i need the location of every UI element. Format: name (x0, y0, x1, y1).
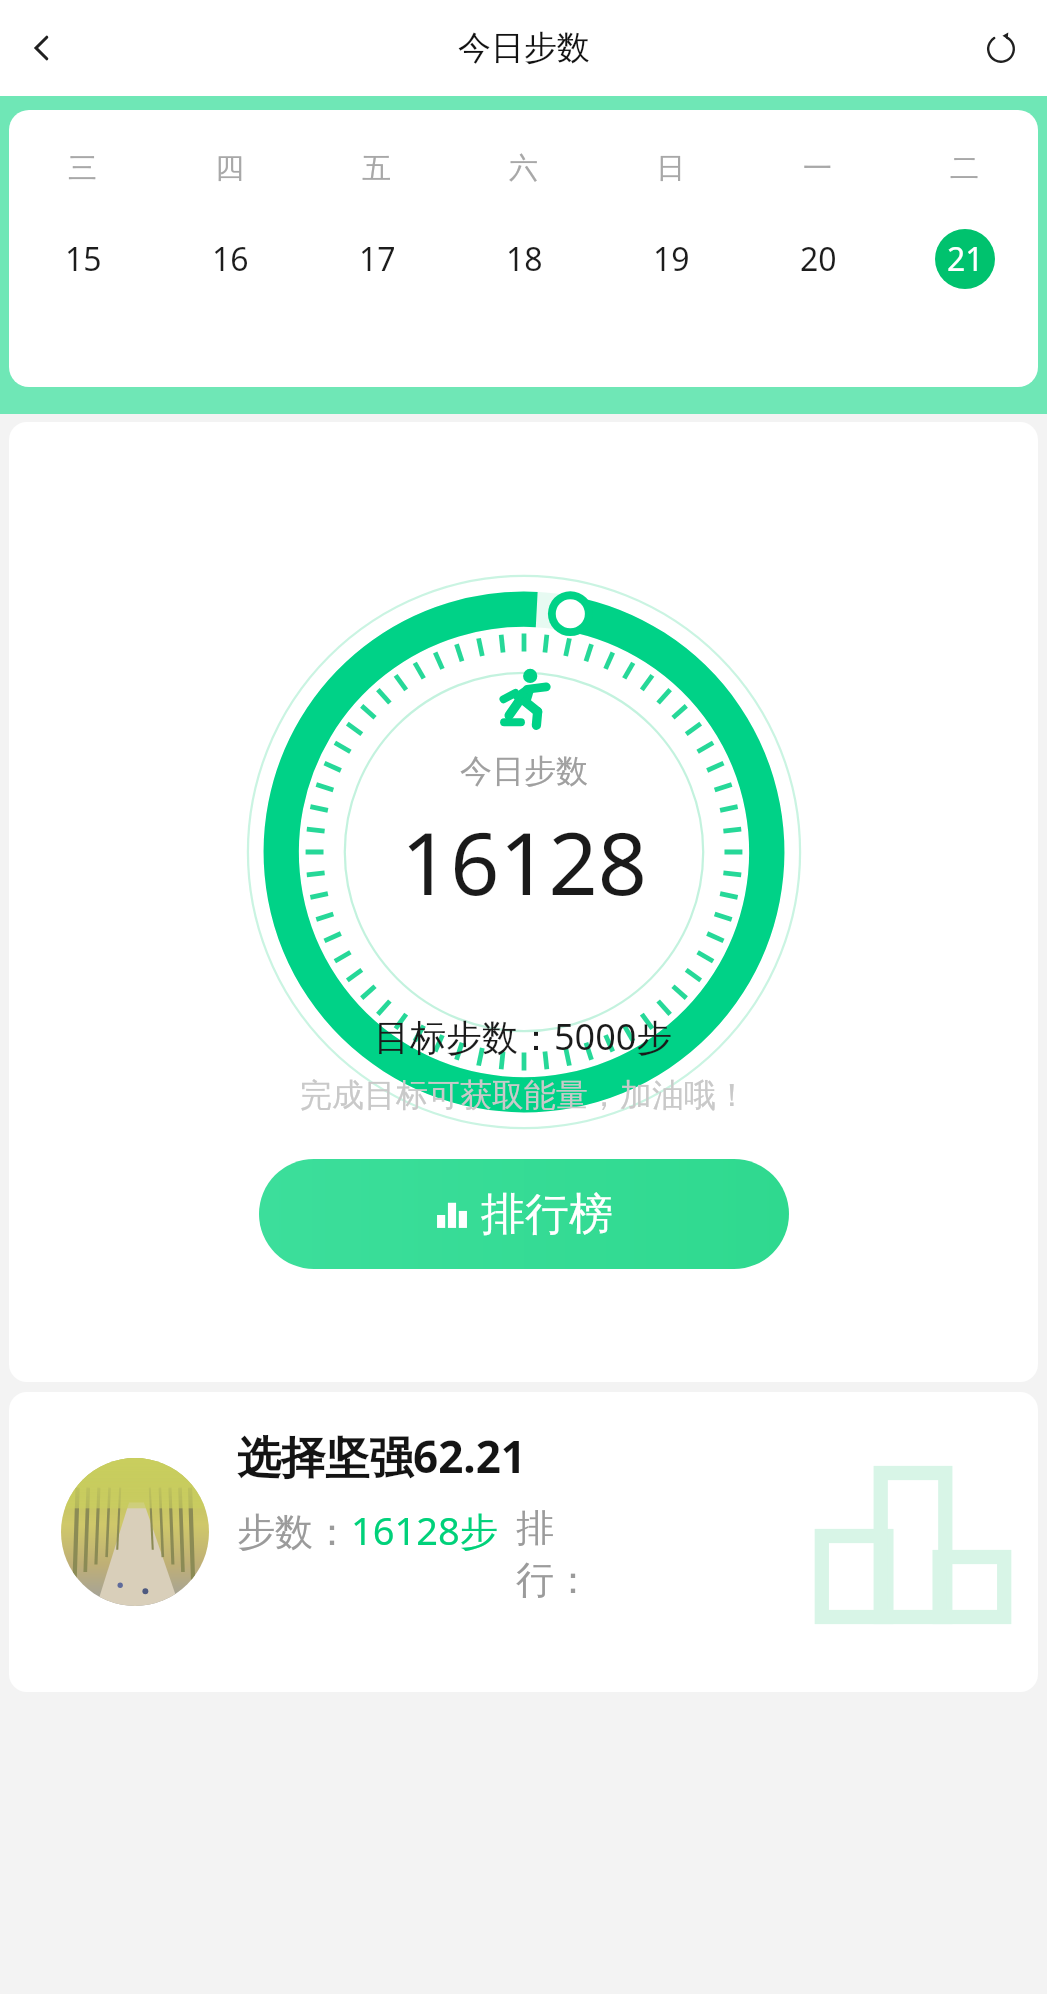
button[interactable]: 15 (53, 229, 113, 289)
button[interactable]: 16 (200, 229, 260, 289)
button[interactable]: 18 (494, 229, 554, 289)
button[interactable]: Back (14, 20, 70, 76)
staticText: 16128 (401, 803, 647, 920)
staticText: 完成目标可获取能量，加油哦！ (300, 1075, 748, 1115)
staticText: 18 (506, 237, 543, 281)
button[interactable]: 17 (347, 229, 407, 289)
staticText: 五 (362, 150, 391, 187)
staticText: 目标步数：5000步 (374, 1012, 673, 1061)
staticText: 二 (950, 150, 979, 187)
button[interactable]: 三 (9, 110, 1038, 387)
staticText: 16 (212, 237, 249, 281)
button[interactable]: Refresh (973, 20, 1029, 76)
staticText: 15 (65, 237, 102, 281)
staticText: 19 (653, 237, 690, 281)
staticText: 日 (656, 150, 685, 187)
staticText: 21 (947, 237, 984, 281)
button[interactable]: 排行榜 (259, 1159, 789, 1269)
staticText: 今日步数 (458, 27, 590, 69)
button[interactable]: 21 (935, 229, 995, 289)
staticText: 六 (509, 150, 538, 187)
staticText: 排行榜 (481, 1187, 613, 1242)
button[interactable]: 选择坚强62.21 (9, 1392, 1038, 1692)
staticText: 17 (359, 237, 396, 281)
staticText: 一 (803, 150, 832, 187)
staticText: 今日步数 (460, 751, 588, 791)
staticText: 四 (215, 150, 244, 187)
staticText: 选择坚强62.21 (237, 1426, 527, 1486)
staticText: 三 (68, 150, 97, 187)
staticText: 20 (800, 237, 837, 281)
staticText: 排 行： (516, 1504, 592, 1604)
button[interactable]: 20 (788, 229, 848, 289)
staticText: 步数：16128步 (237, 1504, 498, 1556)
button[interactable]: 19 (641, 229, 701, 289)
